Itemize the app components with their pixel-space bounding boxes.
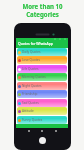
staticText: Life Quotes [22, 67, 39, 71]
staticText: Night Quotes [22, 84, 42, 88]
button[interactable]: Quotes for WhatsApp [16, 38, 68, 48]
staticText: Sad Quotes [22, 101, 39, 105]
button[interactable]: Morning Quotes [17, 73, 67, 81]
staticText: Daily Quotes [22, 50, 41, 54]
button[interactable]: Night Quotes [17, 82, 67, 90]
button[interactable]: Attitude [17, 107, 67, 115]
button[interactable]: Home button [39, 137, 46, 144]
button[interactable]: Funny Quotes [17, 116, 67, 124]
staticText: Funny Quotes [22, 118, 43, 122]
button[interactable]: Love Quotes [17, 56, 67, 64]
button[interactable]: Life Quotes [17, 65, 67, 73]
staticText: Love Quotes [22, 58, 41, 62]
staticText: Categories [26, 10, 59, 18]
button[interactable]: Friendship [17, 90, 67, 98]
staticText: More than 10 [22, 2, 63, 10]
staticText: Attitude [22, 109, 34, 113]
staticText: Friendship [22, 92, 38, 96]
button[interactable]: Sad Quotes [17, 99, 67, 107]
button[interactable]: Daily Quotes [17, 48, 67, 56]
staticText: Morning Quotes [22, 75, 46, 79]
staticText: Quotes for WhatsApp [18, 41, 53, 46]
